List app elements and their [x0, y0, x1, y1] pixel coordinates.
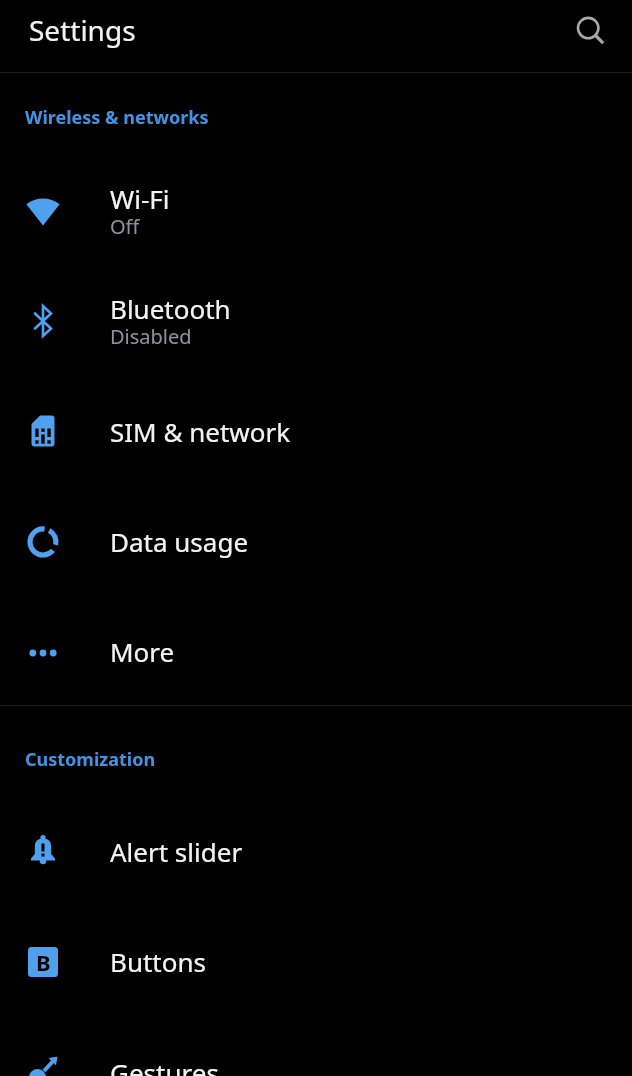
button[interactable]: Gestures	[0, 1017, 632, 1076]
staticText: Buttons	[110, 944, 206, 979]
staticText: Gestures	[110, 1055, 219, 1076]
button[interactable]: Alert slider	[0, 796, 632, 906]
button[interactable]: Bluetooth	[0, 265, 632, 376]
staticText: Data usage	[110, 524, 249, 559]
button[interactable]: B	[0, 906, 632, 1017]
staticText: B	[36, 947, 51, 977]
button[interactable]: Data usage	[0, 486, 632, 597]
staticText: Settings	[29, 11, 136, 49]
staticText: Wi-Fi	[110, 181, 170, 216]
staticText: Alert slider	[110, 834, 243, 869]
staticText: Bluetooth	[110, 291, 231, 326]
button[interactable]: Wi-Fi	[0, 155, 632, 265]
staticText: Wireless & networks	[25, 105, 209, 130]
staticText: More	[110, 634, 175, 669]
button[interactable]: SIM & network	[0, 376, 632, 486]
button[interactable]	[568, 14, 612, 58]
button[interactable]: More	[0, 597, 632, 705]
staticText: Disabled	[110, 323, 192, 350]
staticText: Customization	[25, 747, 156, 772]
staticText: Off	[110, 213, 140, 240]
staticText: SIM & network	[110, 414, 291, 449]
